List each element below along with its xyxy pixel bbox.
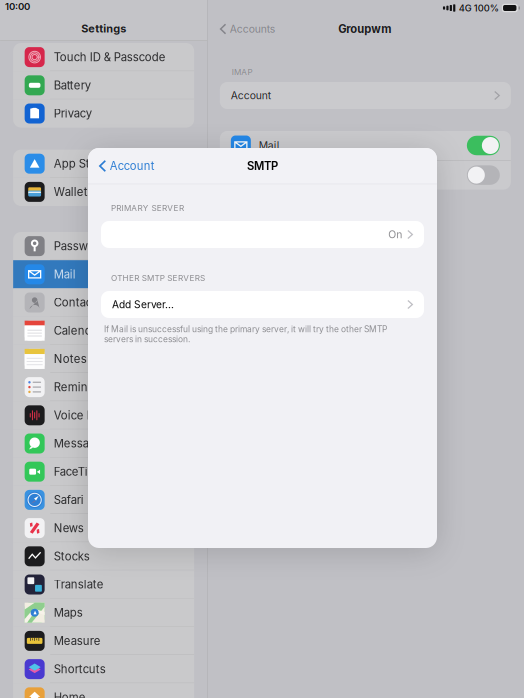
staticText: Wallet & Apple Pay (54, 185, 155, 199)
button[interactable]: Contacts (13, 288, 194, 317)
staticText: Notes (54, 352, 87, 366)
staticText: Contacts (54, 296, 102, 309)
button[interactable]: Add Server... (101, 291, 424, 318)
button[interactable]: Touch ID & Passcode (13, 43, 194, 71)
button[interactable]: Shortcuts (13, 655, 194, 683)
staticText: Passwords (54, 239, 112, 253)
button[interactable]: Passwords (13, 232, 194, 260)
staticText: Groupwm (338, 22, 391, 36)
staticText: Privacy (54, 107, 92, 120)
staticText: IMAP (232, 67, 253, 77)
staticText: Mail (259, 139, 280, 152)
button[interactable]: News (13, 514, 194, 542)
staticText: If Mail is unsuccessful using the primar… (104, 324, 387, 344)
button[interactable]: Maps (13, 599, 194, 627)
staticText: Voice Memos (54, 408, 127, 422)
button[interactable]: Safari (13, 486, 194, 514)
button[interactable]: Mail (13, 260, 194, 288)
button[interactable]: Calendar (13, 317, 194, 345)
staticText: Account (110, 159, 155, 173)
staticText: Mail (54, 267, 76, 281)
staticText: Battery (54, 78, 91, 92)
staticText: Account (231, 89, 271, 102)
button[interactable]: Measure (13, 627, 194, 655)
staticText: 10:00 (5, 1, 30, 12)
button[interactable]: FaceTime (13, 458, 194, 486)
button[interactable]: Reminders (13, 373, 194, 401)
button[interactable]: Account (88, 148, 166, 184)
staticText: Stocks (54, 549, 90, 563)
staticText: Touch ID & Passcode (54, 50, 166, 64)
button[interactable]: Accounts (209, 16, 286, 42)
staticText: Calendar (54, 324, 102, 337)
staticText: Add Server... (112, 298, 174, 311)
staticText: App Store (54, 157, 108, 170)
staticText: Translate (54, 578, 104, 591)
button[interactable]: Voice Memos (13, 401, 194, 429)
staticText: 4G 100% (459, 2, 499, 14)
staticText: Reminders (54, 380, 112, 394)
staticText: Home (54, 690, 86, 698)
button[interactable]: Stocks (13, 542, 194, 570)
staticText: Measure (54, 634, 101, 648)
staticText: FaceTime (54, 465, 105, 478)
button[interactable]: On (101, 221, 424, 248)
staticText: Settings (81, 22, 126, 35)
staticText: Shortcuts (54, 662, 106, 676)
button[interactable]: Privacy (13, 99, 194, 128)
staticText: SMTP (247, 159, 278, 173)
button[interactable]: Battery (13, 71, 194, 99)
staticText: Safari (54, 493, 84, 507)
button[interactable]: Home (13, 683, 194, 698)
staticText: Maps (54, 606, 83, 619)
staticText: On (388, 228, 402, 241)
staticText: Messages (54, 437, 109, 450)
staticText: News (54, 521, 84, 535)
button[interactable]: Notes (13, 345, 194, 373)
button[interactable]: Translate (13, 570, 194, 599)
button[interactable]: App Store (13, 150, 194, 178)
button[interactable]: Account (220, 82, 511, 109)
button[interactable]: Wallet & Apple Pay (13, 178, 194, 206)
staticText: Accounts (230, 23, 275, 35)
staticText: OTHER SMTP SERVERS (111, 273, 205, 283)
staticText: PRIMARY SERVER (111, 203, 184, 213)
button[interactable]: Messages (13, 429, 194, 458)
